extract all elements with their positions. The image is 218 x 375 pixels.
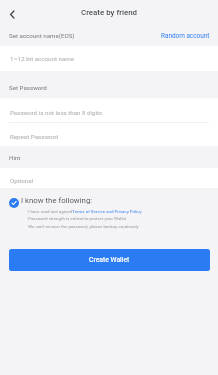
button[interactable]: Optional (0, 168, 218, 188)
button[interactable]: Back (1, 1, 23, 23)
staticText: Random account (161, 32, 210, 40)
staticText: Set Password (9, 84, 47, 91)
staticText: Optional (10, 177, 34, 184)
staticText: Set account name(EOS) (9, 32, 75, 39)
staticText: ·Password strength is critical to protec… (27, 216, 127, 221)
staticText: Repeat Password (10, 133, 59, 140)
staticText: Hint (9, 154, 21, 161)
staticText: Create Wallet (89, 256, 130, 264)
staticText: ·We can't recover the password, please b… (27, 224, 139, 229)
button[interactable]: Random account (161, 32, 210, 40)
staticText: Password is not less than 8 digits (10, 109, 103, 116)
button[interactable]: 1~12 bit account name (0, 46, 218, 71)
button[interactable]: Repeat Password (0, 122, 218, 146)
button[interactable]: Agree to terms (9, 198, 19, 208)
button[interactable]: ·I have read and agreedTerms of Service … (27, 209, 142, 214)
button[interactable]: Password is not less than 8 digits (0, 98, 218, 122)
staticText: I know the following: (21, 196, 93, 205)
staticText: 1~12 bit account name (10, 55, 74, 62)
staticText: Create by friend (81, 8, 138, 17)
button[interactable]: Create Wallet (9, 249, 210, 271)
